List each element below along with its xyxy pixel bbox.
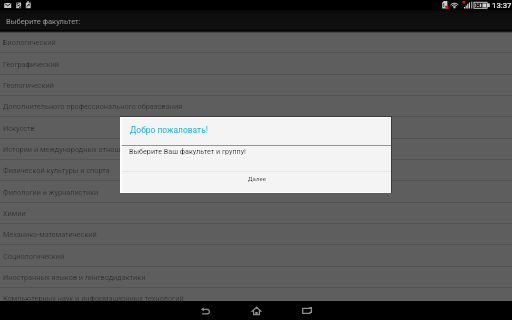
button[interactable]: Истории и международных отношений xyxy=(0,139,512,160)
staticText: Искусств xyxy=(3,124,35,133)
staticText: Выберите факультет: xyxy=(6,17,81,26)
button[interactable]: Иностранных языков и лингводидактики xyxy=(0,267,512,288)
staticText: Механико-математический xyxy=(3,230,97,239)
staticText: Дополнительного профессионального образо… xyxy=(3,102,183,111)
staticText: Иностранных языков и лингводидактики xyxy=(3,273,146,282)
staticText: Биологический xyxy=(3,38,56,47)
staticText: Выберите Ваш факультет и группу! xyxy=(129,147,246,155)
staticText: Добро пожаловать! xyxy=(130,125,208,135)
button[interactable]: Химии xyxy=(0,203,512,224)
staticText: Компьютерных наук и информационных техно… xyxy=(3,294,184,303)
button[interactable]: Далее xyxy=(122,172,391,193)
button[interactable]: Искусств xyxy=(0,118,512,139)
staticText: 13:37 xyxy=(492,1,512,10)
button[interactable]: Back xyxy=(195,301,215,320)
staticText: Социологический xyxy=(3,252,65,261)
button[interactable]: Дополнительного профессионального образо… xyxy=(0,96,512,117)
button[interactable]: Геологический xyxy=(0,75,512,96)
staticText: Географический xyxy=(3,60,60,69)
button[interactable]: Механико-математический xyxy=(0,224,512,245)
button[interactable]: Социологический xyxy=(0,246,512,267)
button[interactable]: Компьютерных наук и информационных техно… xyxy=(0,288,512,309)
button[interactable]: Биологический xyxy=(0,32,512,53)
staticText: Далее xyxy=(248,175,266,182)
staticText: Истории и международных отношений xyxy=(3,145,137,154)
button[interactable]: Филологии и журналистики xyxy=(0,182,512,203)
staticText: Филологии и журналистики xyxy=(3,188,99,197)
staticText: Физической культуры и спорта xyxy=(3,166,110,175)
staticText: Геологический xyxy=(3,81,55,90)
button[interactable]: Физической культуры и спорта xyxy=(0,160,512,181)
staticText: Химии xyxy=(3,209,26,218)
button[interactable]: Recent apps xyxy=(297,301,317,320)
button[interactable]: Географический xyxy=(0,54,512,75)
button[interactable]: Home xyxy=(246,301,266,320)
